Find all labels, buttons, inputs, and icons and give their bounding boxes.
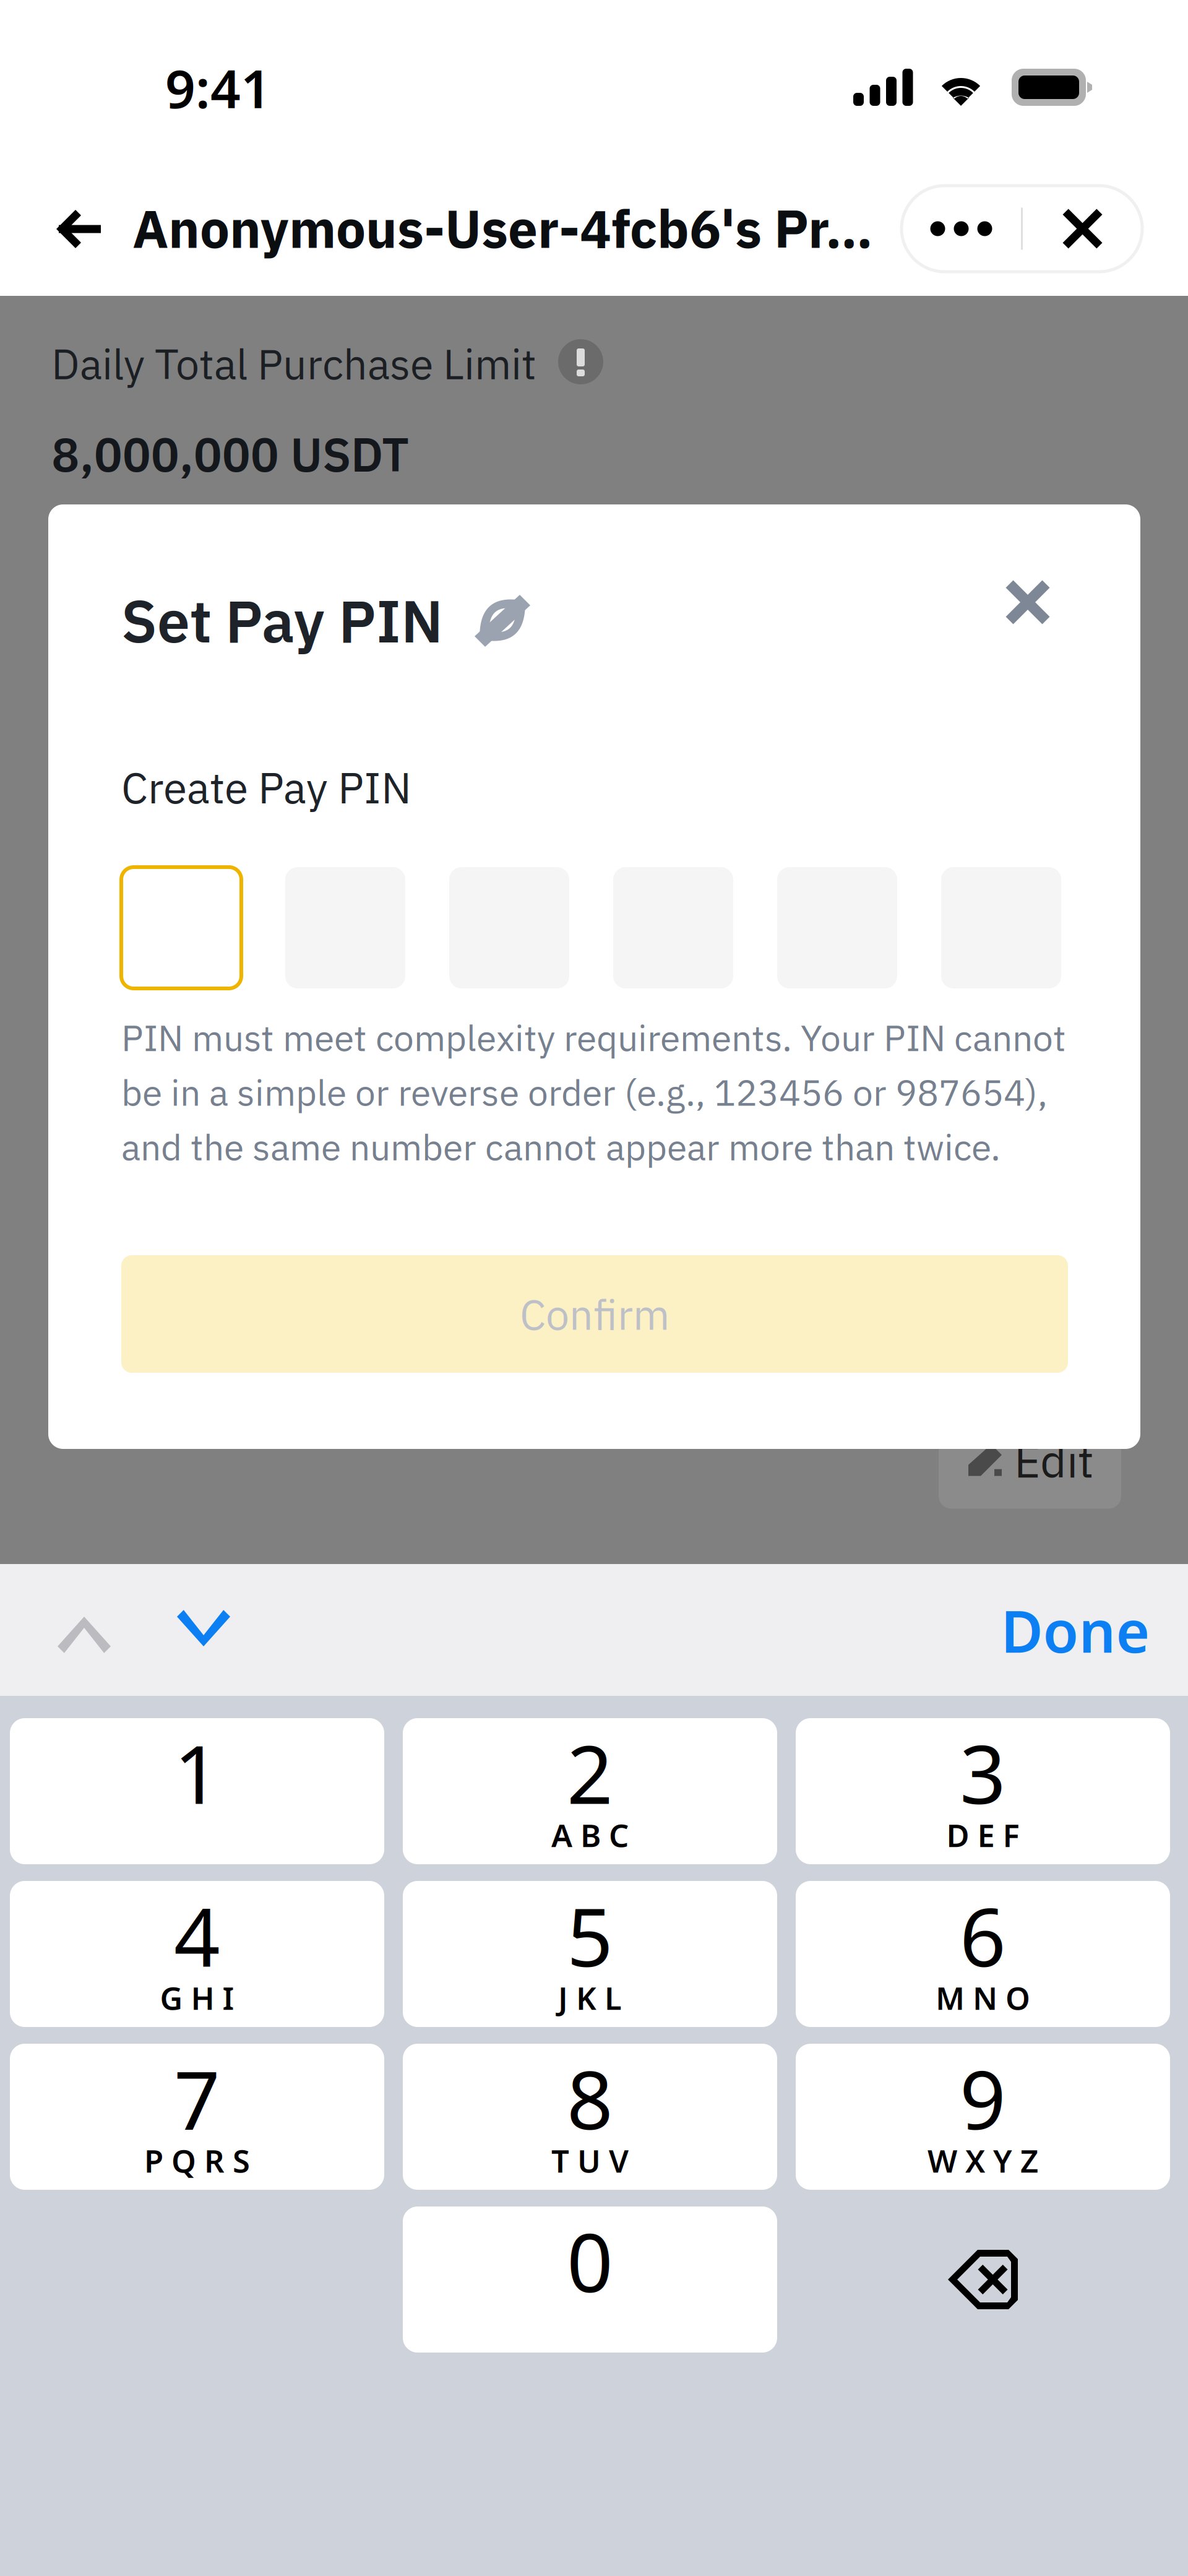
staticText: Set Pay PIN bbox=[121, 582, 443, 659]
button[interactable]: 5 bbox=[403, 1881, 777, 2027]
button[interactable]: Back bbox=[41, 192, 116, 266]
staticText: W X Y Z bbox=[928, 2140, 1038, 2181]
button[interactable]: 1 bbox=[10, 1718, 384, 1864]
staticText: M N O bbox=[936, 1977, 1030, 2019]
button[interactable]: Previous field bbox=[38, 1589, 131, 1675]
staticText: 8 bbox=[567, 2044, 613, 2152]
staticText: 9 bbox=[960, 2044, 1006, 2152]
button[interactable]: Close bbox=[1023, 186, 1142, 272]
button[interactable]: 8 bbox=[403, 2044, 777, 2190]
button[interactable]: More options bbox=[902, 186, 1021, 272]
staticText: PIN must meet complexity requirements. Y… bbox=[121, 1014, 1066, 1170]
staticText: Edit bbox=[1014, 1431, 1094, 1490]
staticText: J K L bbox=[558, 1977, 622, 2019]
staticText: G H I bbox=[160, 1977, 234, 2019]
button[interactable]: Next field bbox=[157, 1589, 250, 1675]
button[interactable]: 0 bbox=[403, 2206, 777, 2353]
staticText: A B C bbox=[551, 1814, 629, 1856]
button[interactable]: 2 bbox=[403, 1718, 777, 1864]
button[interactable]: 6 bbox=[796, 1881, 1170, 2027]
staticText: 4 bbox=[174, 1882, 220, 1989]
staticText: 6 bbox=[960, 1882, 1006, 1989]
button[interactable]: Confirm bbox=[121, 1255, 1068, 1373]
button[interactable]: 4 bbox=[10, 1881, 384, 2027]
staticText: 2 bbox=[567, 1719, 613, 1826]
staticText: Anonymous-User-4fcb6's Pr… bbox=[132, 194, 873, 262]
button[interactable]: Edit bbox=[939, 1412, 1121, 1509]
staticText: D E F bbox=[946, 1814, 1019, 1856]
button[interactable]: 7 bbox=[10, 2044, 384, 2190]
staticText: Done bbox=[1001, 1592, 1150, 1669]
staticText: 9:41 bbox=[165, 53, 271, 123]
staticText: 0 bbox=[567, 2207, 613, 2315]
button[interactable]: Close bbox=[991, 565, 1065, 639]
staticText: P Q R S bbox=[144, 2140, 250, 2181]
staticText: Daily Total Purchase Limit bbox=[51, 336, 536, 391]
staticText: 7 bbox=[174, 2044, 220, 2152]
staticText: 5 bbox=[567, 1882, 613, 1989]
staticText: Confirm bbox=[520, 1287, 669, 1341]
button[interactable]: Delete bbox=[796, 2206, 1170, 2353]
button[interactable]: 9 bbox=[796, 2044, 1170, 2190]
staticText: T U V bbox=[551, 2140, 629, 2181]
staticText: 3 bbox=[960, 1719, 1006, 1826]
staticText: 1 bbox=[174, 1719, 220, 1826]
button[interactable]: 3 bbox=[796, 1718, 1170, 1864]
staticText: 8,000,000 USDT bbox=[51, 423, 409, 485]
button[interactable]: Done bbox=[989, 1587, 1162, 1674]
staticText: Create Pay PIN bbox=[121, 759, 411, 815]
